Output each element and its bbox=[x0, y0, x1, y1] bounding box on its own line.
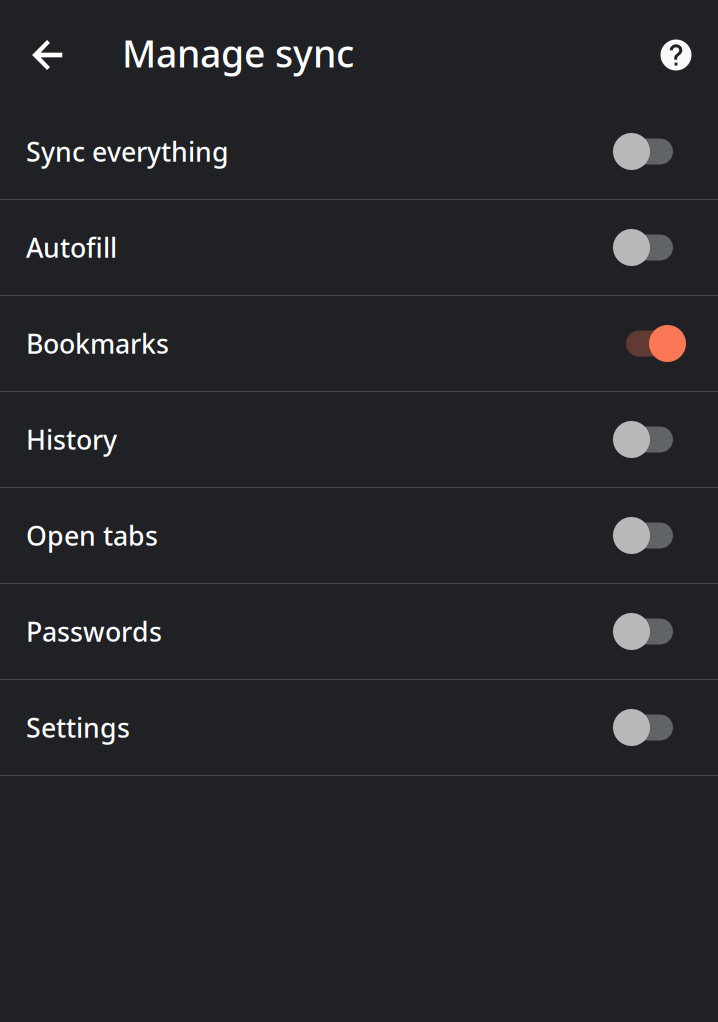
button[interactable]: Settings bbox=[0, 680, 718, 775]
staticText: Autofill bbox=[26, 230, 117, 265]
button[interactable]: Bookmarks bbox=[0, 296, 718, 391]
staticText: Settings bbox=[26, 710, 130, 745]
staticText: History bbox=[26, 422, 117, 457]
button[interactable]: Help bbox=[644, 17, 708, 87]
staticText: Passwords bbox=[26, 614, 162, 649]
staticText: Sync everything bbox=[26, 134, 229, 169]
button[interactable]: Open tabs bbox=[0, 488, 718, 583]
button[interactable]: Sync everything bbox=[0, 104, 718, 199]
button[interactable]: History bbox=[0, 392, 718, 487]
button[interactable]: Back bbox=[15, 17, 79, 87]
button[interactable]: Passwords bbox=[0, 584, 718, 679]
button[interactable]: Autofill bbox=[0, 200, 718, 295]
staticText: Manage sync bbox=[122, 28, 354, 78]
staticText: Bookmarks bbox=[26, 326, 169, 361]
staticText: Open tabs bbox=[26, 518, 158, 553]
